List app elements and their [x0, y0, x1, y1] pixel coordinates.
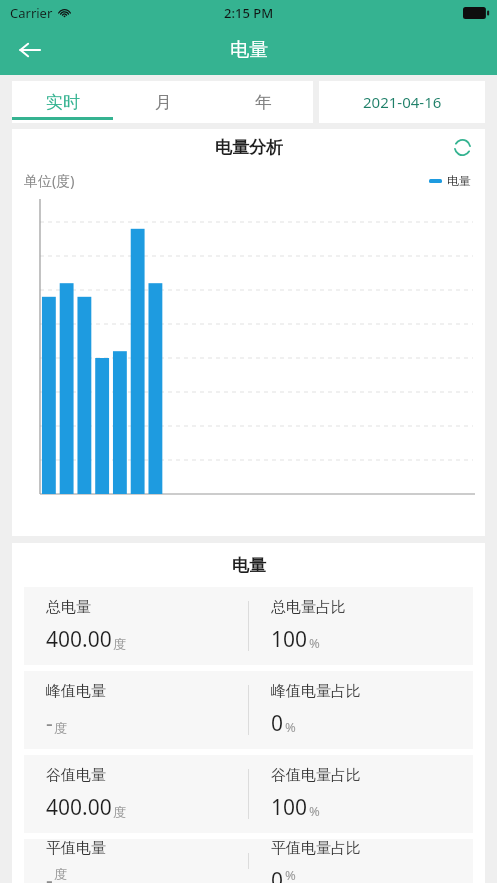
staticText: %	[285, 866, 296, 881]
staticText: 400.00	[46, 625, 112, 654]
staticText: 谷值电量占比	[271, 766, 361, 785]
staticText: %	[309, 802, 320, 820]
staticText: 2:15 PM	[224, 4, 274, 22]
button[interactable]: 谷值电量	[24, 755, 473, 833]
staticText: 峰值电量占比	[271, 682, 361, 701]
button[interactable]: 2021-04-16	[319, 81, 485, 123]
staticText: 度	[54, 866, 67, 881]
button[interactable]: 平值电量	[24, 839, 473, 883]
staticText: 平值电量占比	[271, 839, 361, 858]
staticText: 度	[113, 636, 126, 652]
staticText: 100	[271, 625, 308, 654]
staticText: 总电量	[46, 598, 91, 617]
staticText: 总电量占比	[271, 598, 346, 617]
staticText: 平值电量	[46, 839, 106, 858]
button[interactable]: 年	[213, 81, 313, 123]
staticText: -	[46, 866, 53, 883]
staticText: 单位(度)	[24, 171, 75, 190]
button[interactable]: 实时	[12, 81, 113, 123]
staticText: -	[46, 709, 53, 738]
staticText: 月	[155, 92, 172, 113]
staticText: 实时	[46, 92, 80, 113]
staticText: %	[309, 634, 320, 652]
staticText: 0	[271, 709, 284, 738]
button[interactable]: 月	[113, 81, 213, 123]
staticText: 100	[271, 793, 308, 822]
staticText: 年	[255, 92, 272, 113]
staticText: 电量分析	[215, 137, 283, 158]
staticText: 0	[271, 866, 284, 883]
staticText: 谷值电量	[46, 766, 106, 785]
staticText: 电量	[232, 555, 266, 576]
button[interactable]: Back	[8, 28, 52, 72]
staticText: 度	[113, 804, 126, 820]
staticText: 电量	[447, 173, 471, 188]
staticText: %	[285, 718, 296, 736]
staticText: 400.00	[46, 793, 112, 822]
button[interactable]: 总电量	[24, 587, 473, 665]
staticText: 2021-04-16	[363, 92, 442, 112]
staticText: 度	[54, 720, 67, 736]
staticText: 电量	[230, 38, 268, 62]
staticText: Carrier	[10, 4, 53, 22]
button[interactable]: Refresh	[447, 132, 477, 162]
button[interactable]: 峰值电量	[24, 671, 473, 749]
staticText: 峰值电量	[46, 682, 106, 701]
